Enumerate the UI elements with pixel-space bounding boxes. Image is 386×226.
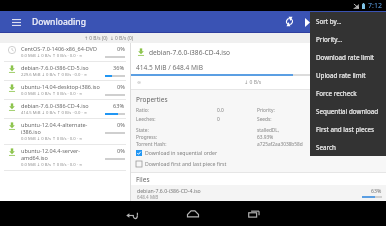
staticText: 0 xyxy=(217,116,257,123)
staticText: 0.0 MiB ↓ 0 B/s ↑ 0 B/s · 0.0 · ∞ xyxy=(21,162,83,168)
staticText: 414.5 MiB / 648.4 MiB xyxy=(136,63,203,72)
button[interactable]: More options xyxy=(300,15,314,29)
staticText: 0.0 xyxy=(217,107,257,114)
staticText: debian-7.6.0-i386-CD-5.iso xyxy=(21,64,89,71)
button[interactable]: ubuntu-12.04.4-server-amd64.iso xyxy=(0,145,130,170)
staticText: 0% xyxy=(117,147,125,155)
staticText: 648.4 MiB xyxy=(137,194,159,199)
button[interactable]: debian-7.6.0-i386-CD-5.iso xyxy=(0,62,130,80)
button[interactable]: Navigation menu xyxy=(8,14,24,30)
staticText: Files xyxy=(136,175,150,184)
staticText: ∞ xyxy=(137,79,142,85)
button[interactable]: First and last pieces xyxy=(310,120,386,138)
staticText: CentOS-7.0-1406-x86_64-DVD xyxy=(21,45,97,52)
button[interactable]: ubuntu-14.04-desktop-i386.iso xyxy=(0,81,130,99)
staticText: 63% xyxy=(371,187,382,194)
staticText: 0% xyxy=(117,45,125,53)
staticText: 36% xyxy=(113,64,125,72)
staticText: Seeds: xyxy=(257,116,382,123)
button[interactable]: Download rate limit xyxy=(310,48,386,66)
staticText: ubuntu-12.04.4-server-amd64.iso xyxy=(21,147,104,161)
button[interactable]: Sequential download xyxy=(310,102,386,120)
staticText: ubuntu-14.04-desktop-i386.iso xyxy=(21,83,100,90)
staticText: debian-7.6.0-i386-CD-4.iso xyxy=(149,48,231,57)
staticText: a725af2aa3038b58d xyxy=(257,141,382,148)
staticText: 0% xyxy=(117,121,125,129)
staticText: Force recheck xyxy=(316,89,357,98)
button[interactable]: Download first and last piece first xyxy=(131,159,386,168)
staticText: Download first and last piece first xyxy=(145,160,227,167)
staticText: Properties xyxy=(136,95,168,104)
button[interactable]: Back xyxy=(119,201,145,226)
button[interactable]: Search xyxy=(310,138,386,156)
staticText: Upload rate limit xyxy=(316,71,366,80)
button[interactable]: Force recheck xyxy=(310,84,386,102)
staticText: 414.5 MiB ↓ 0 B/s ↑ 0 B/s · 0.0 · ∞ xyxy=(21,110,88,116)
button[interactable]: ubuntu-12.04.4-alternate-i386.iso xyxy=(0,119,130,144)
staticText: Priority: xyxy=(257,107,382,114)
staticText: 229.6 MiB ↓ 0 B/s ↑ 0 B/s · 0.0 · ∞ xyxy=(21,72,88,78)
button[interactable]: Priority... xyxy=(310,30,386,48)
staticText: 0.0 MiB ↓ 0 B/s ↑ 0 B/s · 0.0 · ∞ xyxy=(21,136,83,142)
button[interactable]: Upload rate limit xyxy=(310,66,386,84)
staticText: Progress: xyxy=(136,134,217,141)
button[interactable]: Sort by... xyxy=(310,12,386,30)
staticText: 0.0 MiB ↓ 0 B/s ↑ 0 B/s · 0.0 · ∞ xyxy=(21,53,83,59)
staticText: Download in sequential order xyxy=(145,149,218,156)
button[interactable]: CentOS-7.0-1406-x86_64-DVD xyxy=(0,43,130,61)
staticText: Sequential download xyxy=(316,107,379,116)
staticText: First and last pieces xyxy=(316,125,375,134)
staticText: 63.93% xyxy=(257,134,382,141)
staticText: 63% xyxy=(113,102,125,110)
staticText: Torrent Hash: xyxy=(136,141,217,148)
button[interactable]: debian-7.6.0-i386-CD-4.iso xyxy=(131,185,386,201)
staticText: debian-7.6.0-i386-CD-4.iso xyxy=(137,187,201,194)
staticText: Ratio: xyxy=(136,107,217,114)
staticText: 0% xyxy=(117,83,125,91)
button[interactable]: Download in sequential order xyxy=(131,148,386,157)
staticText: Download rate limit xyxy=(316,53,375,62)
staticText: stalledDL, xyxy=(257,127,382,134)
button[interactable]: Home xyxy=(180,201,206,226)
staticText: Downloading xyxy=(32,16,86,28)
button[interactable]: Recent apps xyxy=(241,201,267,226)
staticText: State: xyxy=(136,127,217,134)
staticText: debian-7.6.0-i386-CD-4.iso xyxy=(21,102,89,109)
staticText: ↑ 0 B/s (0) ↓ 0 B/s (0) xyxy=(84,35,134,42)
staticText: 0.0 MiB ↓ 0 B/s ↑ 0 B/s · 0.0 · ∞ xyxy=(21,91,83,97)
staticText: Sort by... xyxy=(316,17,342,26)
staticText: ↓ 0 B/s xyxy=(244,79,262,86)
button[interactable]: debian-7.6.0-i386-CD-4.iso xyxy=(0,100,130,118)
staticText: 7:12 xyxy=(368,1,382,11)
staticText: Leeches: xyxy=(136,116,217,123)
staticText: Priority... xyxy=(316,35,343,44)
button[interactable]: Refresh xyxy=(280,12,299,31)
staticText: ubuntu-12.04.4-alternate-i386.iso xyxy=(21,121,104,135)
button[interactable]: debian-7.6.0-i386-CD-4.iso xyxy=(136,47,386,57)
staticText: Search xyxy=(316,143,336,152)
